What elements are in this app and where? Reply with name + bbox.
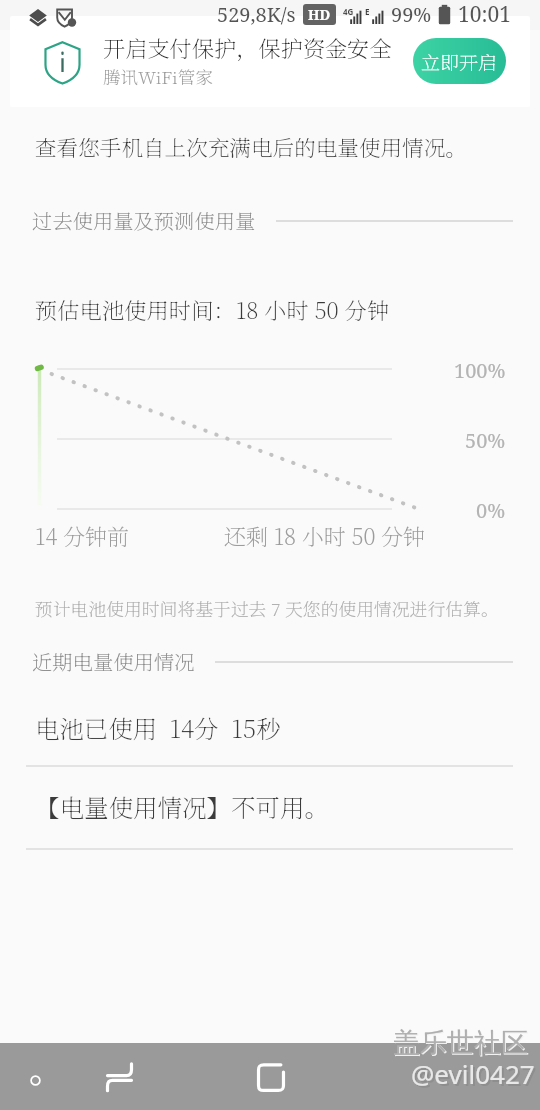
staticText: 【电量使用情况】不可用。 [35,789,329,824]
staticText: @evil0427 [413,1058,537,1093]
staticText: 99% [391,1,432,28]
staticText: 开启支付保护，保护资金安全 [103,31,392,63]
staticText: 14 分钟前 [35,520,129,552]
staticText: @evil0427 [411,1056,535,1091]
button[interactable]: Assistant [10,1055,60,1105]
staticText: 腾讯WiFi管家 [103,64,213,89]
staticText: 近期电量使用情况 [32,647,195,676]
staticText: 529,8K/s [217,1,296,28]
button[interactable]: 开启支付保护，保护资金安全 [10,16,530,107]
staticText: 50% [465,427,506,454]
staticText: 查看您手机自上次充满电后的电量使用情况。 [35,131,467,162]
staticText: 盖乐世社区 [394,1027,529,1061]
staticText: 预估电池使用时间：18 小时 50 分钟 [35,293,390,325]
button[interactable]: 立即开启 [413,38,506,84]
staticText: 还剩 18 小时 50 分钟 [224,520,426,552]
staticText: 100% [454,357,506,384]
staticText: 立即开启 [421,48,498,75]
staticText: 0% [476,497,506,524]
staticText: E [365,6,370,17]
staticText: 电池已使用 14分 15秒 [35,710,281,745]
staticText: HD [308,5,331,24]
staticText: 4G [343,6,354,17]
button[interactable]: Home [236,1049,306,1105]
staticText: 10:01 [458,0,511,29]
button[interactable]: Recent apps [84,1049,154,1105]
staticText: 盖乐世社区 [393,1026,528,1060]
staticText: 过去使用量及预测使用量 [32,206,256,235]
staticText: 预计电池使用时间将基于过去 7 天您的使用情况进行估算。 [35,596,499,622]
